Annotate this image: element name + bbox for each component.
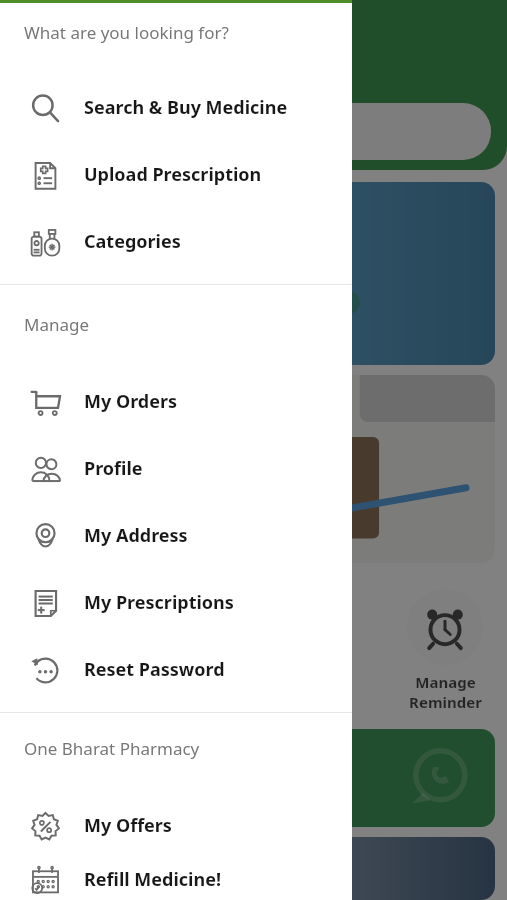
staticText: Search & Buy Medicine [84, 95, 288, 120]
button[interactable]: Search & Buy Medicine [0, 74, 352, 141]
button[interactable]: Reset Password [0, 636, 352, 703]
staticText: Manage Reminder [409, 672, 482, 712]
button[interactable]: Search medicine and otc ... [16, 103, 491, 160]
staticText: Manage [24, 313, 90, 336]
staticText: Reset Password [84, 657, 225, 682]
staticText: Categories [84, 229, 181, 254]
staticText: One Bharat Pharmacy [24, 737, 200, 760]
button[interactable]: My Orders [0, 368, 352, 435]
staticText: Refill Medicine! [84, 867, 221, 892]
button[interactable]: Upload Prescription [0, 141, 352, 208]
button[interactable]: Profile [0, 435, 352, 502]
button[interactable]: Order on WhatsApp [12, 729, 495, 827]
staticText: My Prescriptions [84, 590, 234, 615]
button[interactable]: My Prescriptions [0, 569, 352, 636]
staticText: What are you looking for? [24, 21, 229, 44]
staticText: My Offers [84, 813, 172, 838]
staticText: Upload Prescription [84, 162, 262, 187]
button[interactable]: My Offers [0, 792, 352, 859]
staticText: My Address [84, 523, 188, 548]
button[interactable]: Manage Reminder [383, 589, 507, 712]
button[interactable]: Refill Medicine! [0, 859, 352, 900]
button[interactable]: My Address [0, 502, 352, 569]
staticText: Search medicine and otc ... [36, 120, 250, 143]
staticText: My Orders [84, 389, 178, 414]
button[interactable]: Categories [0, 208, 352, 275]
staticText: Profile [84, 456, 143, 481]
